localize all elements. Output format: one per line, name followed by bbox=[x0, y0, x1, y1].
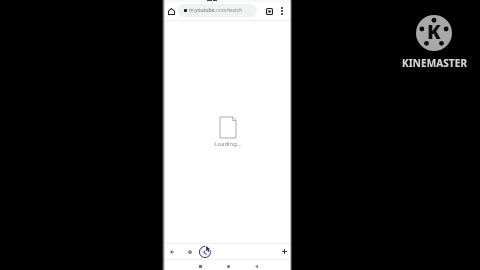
staticText: Loading… bbox=[214, 140, 242, 148]
button[interactable]: Home bbox=[223, 261, 234, 270]
button[interactable]: New tab bbox=[277, 244, 291, 258]
button[interactable]: Bookmarks bbox=[183, 245, 197, 259]
staticText: m.youtube bbox=[189, 7, 215, 14]
button[interactable]: Home page bbox=[193, 240, 217, 256]
button[interactable]: Back bbox=[251, 261, 262, 270]
staticText: .com/watch bbox=[215, 7, 243, 14]
button[interactable]: More options bbox=[276, 2, 288, 20]
button[interactable]: Back bbox=[165, 245, 179, 259]
button[interactable]: m.youtube bbox=[178, 4, 257, 17]
staticText: KINEMASTER bbox=[402, 56, 468, 70]
button[interactable]: Recent apps bbox=[195, 261, 206, 270]
staticText: K bbox=[427, 18, 441, 45]
button[interactable]: Home bbox=[165, 2, 177, 20]
button[interactable]: Switch tabs bbox=[263, 2, 275, 20]
